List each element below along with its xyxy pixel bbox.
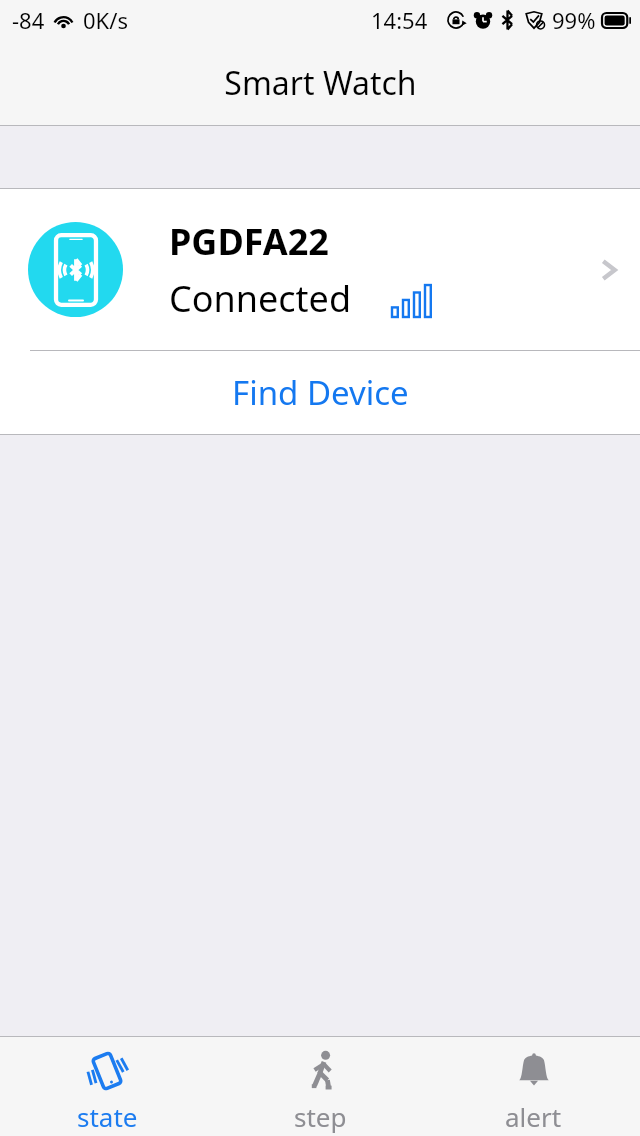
other: Device details [596,250,622,290]
button[interactable]: alert [427,1037,640,1136]
staticText: 14:54 [371,5,428,35]
staticText: Find Device [232,370,409,415]
staticText: state [77,1099,138,1134]
staticText: 99% [552,5,596,35]
button[interactable]: step [214,1037,427,1136]
button[interactable]: Find Device [0,351,640,434]
staticText: alert [505,1099,562,1134]
button[interactable]: PGDFA22 [0,189,640,350]
staticText: 0K/s [83,5,128,35]
staticText: -84 [12,5,45,35]
staticText: PGDFA22 [169,217,329,266]
button[interactable]: state [0,1037,214,1136]
staticText: step [294,1099,347,1134]
staticText: Connected [169,274,352,323]
staticText: Smart Watch [224,61,417,105]
